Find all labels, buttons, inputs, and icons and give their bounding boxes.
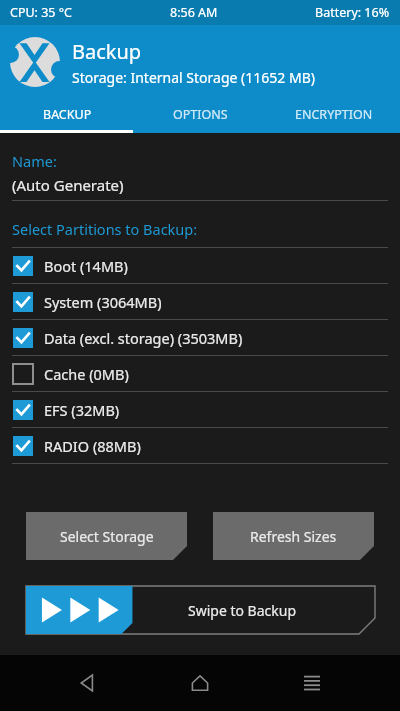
button[interactable]: Select Storage <box>26 512 187 560</box>
staticText: BACKUP <box>43 106 92 123</box>
staticText: System (3064MB) <box>44 292 162 312</box>
staticText: Backup <box>72 38 142 65</box>
staticText: (Auto Generate) <box>12 175 124 195</box>
staticText: Data (excl. storage) (3503MB) <box>44 328 243 348</box>
staticText: CPU: 35 °C <box>10 4 73 21</box>
staticText: Name: <box>12 151 57 171</box>
staticText: Refresh Sizes <box>250 527 337 546</box>
staticText: Select Storage <box>60 527 154 546</box>
button[interactable]: Refresh Sizes <box>213 512 374 560</box>
button[interactable]: ENCRYPTION <box>267 99 400 130</box>
button[interactable]: RADIO (88MB) <box>0 428 400 464</box>
button[interactable]: Data (excl. storage) (3503MB) <box>0 320 400 356</box>
staticText: ENCRYPTION <box>295 106 373 123</box>
staticText: OPTIONS <box>173 106 228 123</box>
button[interactable]: Recent apps <box>288 659 336 707</box>
staticText: 8:56 AM <box>170 4 218 21</box>
staticText: Battery: 16% <box>315 4 390 21</box>
staticText: Swipe to Backup <box>188 601 297 620</box>
staticText: Storage: Internal Storage (11652 MB) <box>72 68 315 87</box>
button[interactable]: BACKUP <box>0 99 134 130</box>
staticText: RADIO (88MB) <box>44 436 141 456</box>
staticText: Select Partitions to Backup: <box>12 219 198 239</box>
button[interactable]: Swipe to Backup <box>26 586 375 634</box>
button[interactable]: Back <box>64 659 112 707</box>
button[interactable]: Boot (14MB) <box>0 248 400 284</box>
staticText: EFS (32MB) <box>44 400 120 420</box>
staticText: Cache (0MB) <box>44 364 129 384</box>
button[interactable]: EFS (32MB) <box>0 392 400 428</box>
button[interactable]: Cache (0MB) <box>0 356 400 392</box>
button[interactable]: Home <box>176 659 224 707</box>
button[interactable]: OPTIONS <box>134 99 267 130</box>
button[interactable]: System (3064MB) <box>0 284 400 320</box>
button[interactable]: Name: <box>12 151 388 201</box>
staticText: Boot (14MB) <box>44 256 128 276</box>
